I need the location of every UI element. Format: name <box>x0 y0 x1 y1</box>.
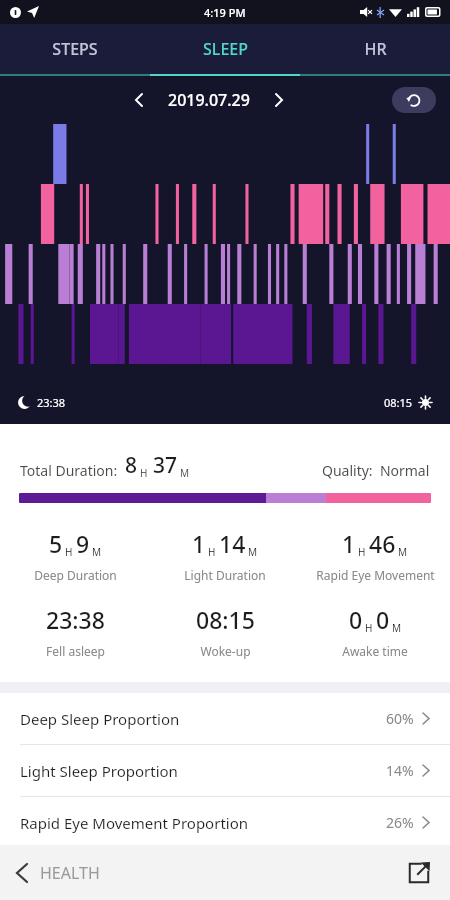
staticText: 37 <box>153 451 178 480</box>
staticText: H <box>140 466 148 480</box>
button[interactable]: Deep Sleep Proportion <box>0 693 450 744</box>
staticText: 26% <box>386 813 414 832</box>
staticText: 60% <box>386 709 414 728</box>
staticText: H <box>358 545 366 559</box>
button[interactable]: Next day <box>264 85 294 115</box>
staticText: 9 <box>76 528 90 559</box>
staticText: M <box>398 545 408 559</box>
staticText: Deep Sleep Proportion <box>20 709 180 729</box>
staticText: Light Sleep Proportion <box>20 761 178 781</box>
staticText: M <box>248 545 258 559</box>
button[interactable]: HEALTH <box>16 862 108 884</box>
staticText: Quality: Normal <box>322 461 430 480</box>
staticText: H <box>65 545 73 559</box>
staticText: Total Duration: <box>20 461 118 480</box>
staticText: 23:38 <box>37 395 66 410</box>
staticText: M <box>392 621 402 635</box>
button[interactable]: Refresh <box>392 87 436 113</box>
staticText: Deep Duration <box>34 567 117 583</box>
staticText: STEPS <box>52 38 98 60</box>
staticText: H <box>208 545 216 559</box>
staticText: SLEEP <box>203 38 248 60</box>
button[interactable]: HR <box>300 24 450 74</box>
staticText: HEALTH <box>40 862 100 884</box>
staticText: HR <box>364 38 387 60</box>
staticText: 14 <box>219 528 246 559</box>
staticText: 0 <box>349 604 363 635</box>
staticText: 14% <box>386 761 414 780</box>
staticText: Woke-up <box>200 643 251 659</box>
button[interactable]: Light Sleep Proportion <box>0 745 450 796</box>
staticText: 5 <box>49 528 63 559</box>
staticText: 08:15 <box>196 604 255 635</box>
staticText: M <box>180 466 190 480</box>
staticText: Fell asleep <box>46 643 105 659</box>
button[interactable]: STEPS <box>0 24 150 74</box>
button[interactable]: Rapid Eye Movement Proportion <box>0 797 450 848</box>
staticText: 1 <box>342 528 356 559</box>
staticText: 2019.07.29 <box>168 89 250 111</box>
button[interactable]: SLEEP <box>150 24 300 74</box>
staticText: 0 <box>376 604 390 635</box>
staticText: 4:19 PM <box>204 5 246 20</box>
staticText: 1 <box>192 528 206 559</box>
staticText: Rapid Eye Movement <box>316 567 435 583</box>
staticText: 8 <box>125 451 138 480</box>
staticText: H <box>365 621 373 635</box>
staticText: 08:15 <box>384 395 413 410</box>
button[interactable]: Open external <box>404 858 434 888</box>
staticText: 23:38 <box>46 604 105 635</box>
staticText: 46 <box>369 528 396 559</box>
staticText: Awake time <box>342 643 408 659</box>
staticText: Light Duration <box>184 567 266 583</box>
button[interactable]: Previous day <box>124 85 154 115</box>
staticText: M <box>92 545 102 559</box>
staticText: Rapid Eye Movement Proportion <box>20 813 249 833</box>
